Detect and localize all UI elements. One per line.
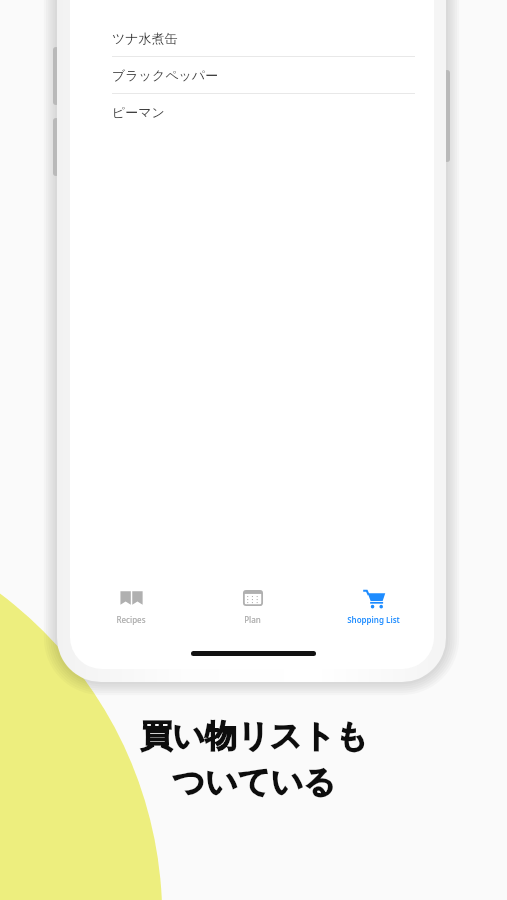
staticText: Recipes (116, 614, 146, 625)
button[interactable]: ツナ水煮缶 (70, 0, 434, 57)
staticText: ツナ水煮缶 (112, 30, 178, 46)
button[interactable]: Recipes (70, 586, 192, 638)
button[interactable]: Shopping List (313, 586, 434, 638)
staticText: ピーマン (112, 104, 165, 120)
staticText: 買い物リストも (140, 716, 368, 756)
button[interactable]: ブラックペッパー (70, 57, 434, 94)
staticText: Plan (244, 614, 261, 625)
button[interactable]: ピーマン (70, 94, 434, 130)
staticText: ついている (172, 762, 336, 802)
staticText: Shopping List (347, 614, 400, 625)
staticText: ブラックペッパー (112, 67, 219, 83)
button[interactable]: Plan (192, 586, 313, 638)
